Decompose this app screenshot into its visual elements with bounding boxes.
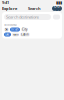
staticText: Done [54, 3, 60, 14]
button[interactable]: Lake [4, 32, 11, 36]
staticText: Explore [2, 6, 17, 11]
button[interactable]: Beach [10, 27, 20, 31]
staticText: Lake [5, 33, 10, 36]
button[interactable]: Farm [12, 32, 19, 36]
button[interactable]: City [21, 27, 28, 31]
staticText: ▮▮▮ [56, 0, 62, 5]
staticText: Search [28, 6, 41, 11]
staticText: Ski [5, 28, 8, 31]
button[interactable]: Done [52, 6, 62, 11]
staticText: Search destinations [6, 14, 39, 20]
button[interactable]: Ski [4, 27, 9, 31]
staticText: Beach [11, 28, 19, 31]
staticText: City [22, 28, 27, 31]
staticText: 9:41 [2, 0, 9, 5]
button[interactable] [53, 14, 60, 19]
staticText: Farm [13, 33, 18, 36]
button[interactable]: Cabin [20, 32, 30, 36]
staticText: Cabin [21, 33, 29, 36]
staticText: SUGGESTED [4, 23, 17, 26]
